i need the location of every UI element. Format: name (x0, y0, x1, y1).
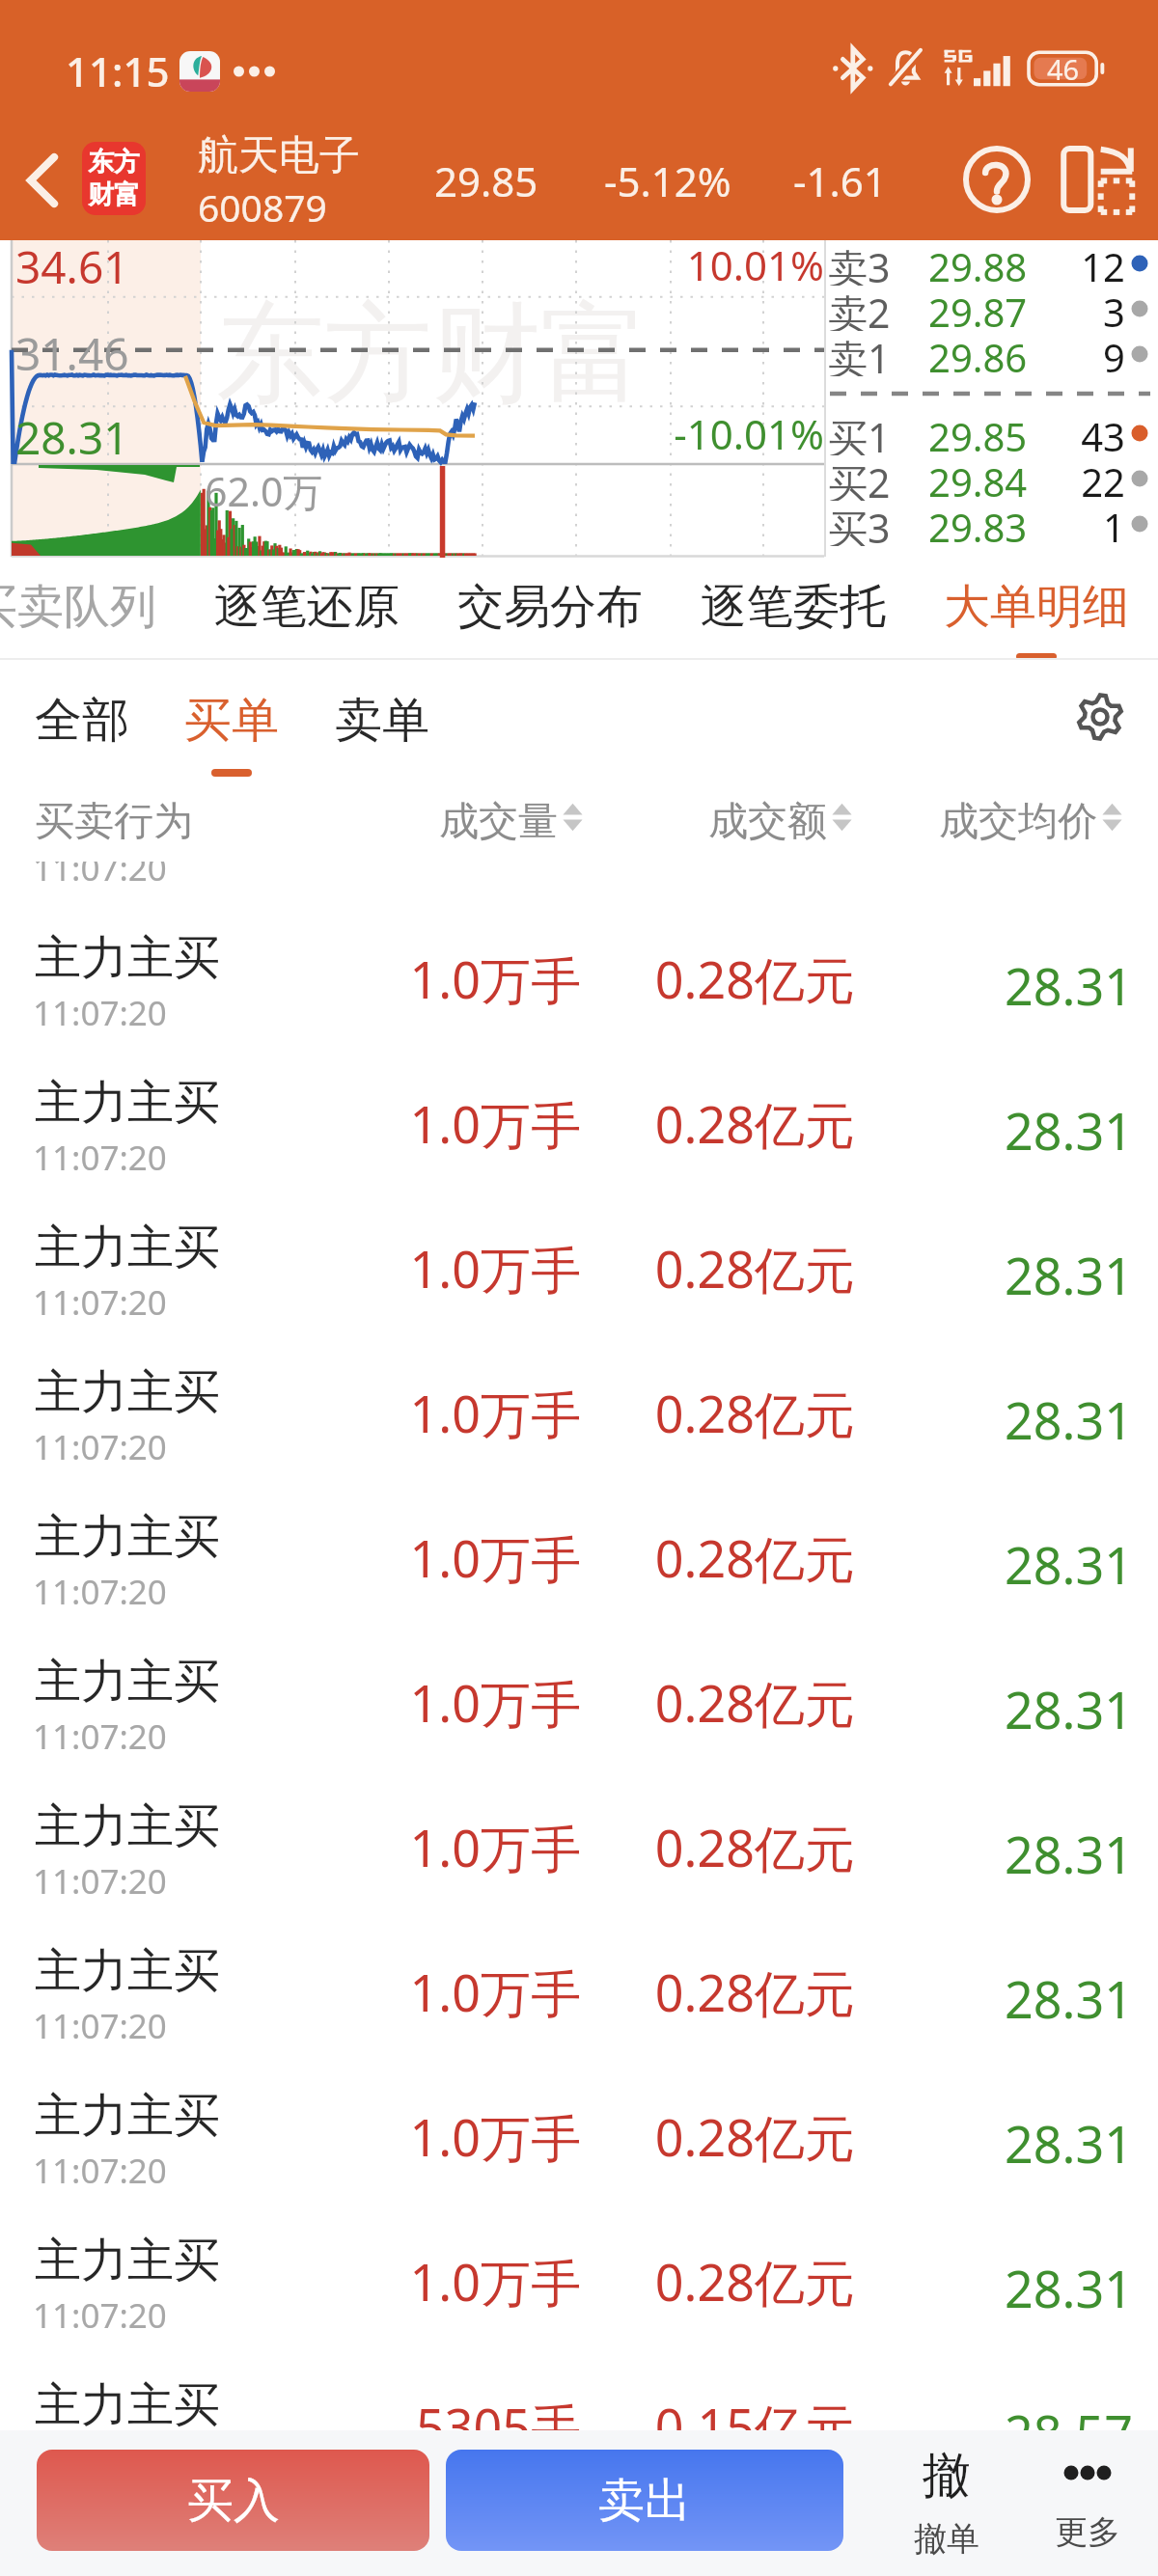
staticText: 1.0万手 (291, 1668, 581, 1737)
staticText: 逐笔委托 (701, 578, 886, 636)
staticText: -5.12% (604, 153, 731, 208)
staticText: 买3 (828, 501, 891, 546)
button[interactable]: 成交额 (708, 797, 852, 847)
button[interactable]: Help (944, 126, 1050, 233)
staticText: 1.0万手 (291, 1958, 581, 2026)
staticText: 交易分布 (457, 578, 643, 636)
button[interactable]: 卖2 (826, 286, 1158, 331)
staticText: 买卖队列 (0, 578, 156, 636)
button[interactable]: 主力主买 (0, 1770, 1158, 1915)
button[interactable]: 买3 (826, 501, 1158, 546)
staticText: 28.57 (843, 2398, 1133, 2430)
staticText: 0.28亿元 (565, 2247, 855, 2316)
button[interactable]: 主力主买 (0, 1626, 1158, 1770)
button[interactable]: Split screen (1044, 126, 1150, 233)
button[interactable]: 卖1 (826, 331, 1158, 376)
staticText: 28.31 (843, 1675, 1133, 1743)
staticText: 28.31 (843, 951, 1133, 1020)
staticText: 主力主买 (35, 1508, 220, 1566)
button[interactable]: 卖单 (308, 660, 456, 768)
staticText: 买入 (187, 2472, 280, 2530)
staticText: 航天电子 (198, 130, 360, 181)
staticText: 卖3 (828, 240, 891, 286)
staticText: 东方财富 (216, 287, 648, 423)
button[interactable]: 主力主买 (0, 902, 1158, 1047)
button[interactable]: 逐笔委托 (672, 557, 915, 660)
button[interactable]: 卖出 (446, 2450, 843, 2551)
staticText: 11:07:20 (33, 1713, 167, 1760)
staticText: 成交量 (439, 797, 558, 847)
staticText: 0.28亿元 (565, 945, 855, 1013)
staticText: 0.28亿元 (565, 1379, 855, 1447)
staticText: 11:07:20 (33, 2148, 167, 2194)
button[interactable]: 买1 (826, 410, 1158, 455)
button[interactable]: Back (1, 126, 84, 234)
staticText: 29.87 (928, 286, 1028, 331)
staticText: 1.0万手 (291, 945, 581, 1013)
staticText: 28.31 (843, 1820, 1133, 1888)
staticText: 12 (1019, 240, 1125, 286)
staticText: 1 (1019, 501, 1125, 546)
button[interactable]: 主力主买 (0, 1336, 1158, 1481)
staticText: 主力主买 (35, 1363, 220, 1421)
button[interactable]: 主力主买 (0, 1481, 1158, 1626)
staticText: 600879 (198, 181, 327, 233)
button[interactable]: 逐笔还原 (185, 557, 428, 660)
staticText: 28.31 (843, 807, 1133, 875)
staticText: 5305手 (291, 2392, 581, 2430)
staticText: 28.31 (15, 407, 129, 468)
staticText: 0.28亿元 (565, 1958, 855, 2026)
button[interactable]: 大单明细 (915, 557, 1158, 660)
button[interactable]: 主力主买 (0, 2205, 1158, 2349)
staticText: 28.31 (843, 1241, 1133, 1309)
button[interactable]: 主力主买 (0, 768, 1158, 902)
button[interactable]: 买入 (37, 2450, 429, 2551)
button[interactable]: 主力主买 (0, 1915, 1158, 2060)
button[interactable]: 主力主买 (0, 2060, 1158, 2205)
staticText: 28.31 (843, 1964, 1133, 2033)
staticText: 28.31 (843, 2254, 1133, 2322)
button[interactable]: 成交均价 (939, 797, 1122, 847)
staticText: 卖出 (598, 2472, 691, 2530)
staticText: 28.31 (843, 1385, 1133, 1454)
staticText: 1.0万手 (291, 2102, 581, 2171)
staticText: 28.31 (843, 2109, 1133, 2178)
staticText: 主力主买 (35, 1797, 220, 1855)
staticText: 大单明细 (944, 578, 1129, 636)
button[interactable]: 卖3 (826, 240, 1158, 286)
button[interactable]: 买2 (826, 455, 1158, 501)
staticText: 3 (1019, 286, 1125, 331)
button[interactable]: 主力主买 (0, 2349, 1158, 2420)
staticText: 买1 (828, 410, 891, 455)
staticText: 财富 (88, 178, 140, 211)
staticText: 撤单 (914, 2518, 979, 2560)
staticText: 0.28亿元 (565, 1813, 855, 1881)
staticText: 成交额 (708, 797, 827, 847)
button[interactable]: 主力主买 (0, 1192, 1158, 1336)
button[interactable]: 交易分布 (428, 557, 672, 660)
staticText: 29.88 (928, 240, 1028, 286)
staticText: 9 (1019, 331, 1125, 376)
button[interactable]: 主力主买 (0, 1047, 1158, 1192)
staticText: 11:07:20 (33, 1135, 167, 1181)
staticText: 1.0万手 (291, 800, 581, 868)
staticText: 34.61 (15, 236, 129, 297)
button[interactable]: 撤 (883, 2446, 1010, 2560)
button[interactable]: 全部 (8, 660, 156, 768)
button[interactable]: Settings (1061, 678, 1139, 755)
staticText: 东方 (88, 146, 140, 178)
staticText: 0.28亿元 (565, 1668, 855, 1737)
staticText: 买2 (828, 455, 891, 501)
button[interactable]: 买卖队列 (0, 557, 185, 660)
button[interactable]: 航天电子 (198, 130, 360, 233)
button[interactable]: 买单 (157, 660, 306, 768)
staticText: 11:07:20 (33, 990, 167, 1036)
staticText: 买卖行为 (35, 797, 193, 847)
staticText: 29.85 (434, 153, 538, 208)
button[interactable]: East Money (82, 142, 146, 215)
button[interactable]: 成交量 (439, 797, 583, 847)
staticText: 主力主买 (35, 1219, 220, 1276)
staticText: 28.31 (843, 1096, 1133, 1165)
button[interactable]: 更多 (1024, 2446, 1151, 2553)
staticText: 11:07:20 (33, 1858, 167, 1905)
